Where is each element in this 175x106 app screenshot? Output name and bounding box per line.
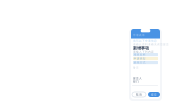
button[interactable]: 取消	[132, 92, 146, 97]
staticText: 请输入下列内容	[133, 50, 154, 54]
staticText: 部门	[133, 80, 139, 83]
staticText: 提交	[151, 93, 157, 96]
staticText: 请确认资料准确无误后提交	[133, 43, 169, 46]
staticText: 提交人	[133, 77, 142, 80]
staticText: 项目名称	[134, 53, 146, 56]
staticText: 申请表单	[133, 33, 145, 37]
staticText: 申请类型	[134, 57, 146, 60]
staticText: 备注	[133, 66, 139, 69]
staticText: 新增事项	[133, 46, 149, 50]
button[interactable]: 提交	[148, 92, 160, 97]
staticText: 取消	[136, 93, 142, 96]
staticText: 填写以下申请信息	[133, 39, 157, 43]
button[interactable]: 申请表单	[133, 33, 145, 37]
staticText: 联系方式	[134, 61, 146, 64]
